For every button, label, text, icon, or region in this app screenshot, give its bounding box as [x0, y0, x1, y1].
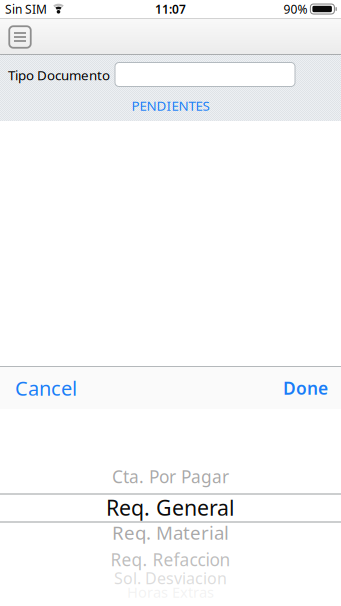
- staticText: Sin SIM: [5, 1, 47, 17]
- staticText: Done: [283, 376, 328, 399]
- staticText: Horas Extras: [127, 582, 214, 602]
- button[interactable]: Cta. Por Pagar: [112, 465, 229, 488]
- staticText: Sol. Desviacion: [114, 567, 227, 589]
- staticText: PENDIENTES: [131, 97, 209, 114]
- staticText: Req. General: [106, 493, 235, 522]
- button[interactable]: Cancel: [15, 367, 77, 408]
- staticText: Req. Material: [112, 520, 229, 545]
- staticText: Req. Refaccion: [110, 548, 230, 571]
- staticText: 11:07: [155, 1, 186, 17]
- button[interactable]: Tipo Documento: [115, 62, 295, 86]
- staticText: Cta. Por Pagar: [112, 465, 229, 488]
- button[interactable]: Menu: [7, 24, 32, 49]
- staticText: Cancel: [15, 375, 77, 401]
- button[interactable]: Done: [283, 367, 328, 408]
- staticText: Tipo Documento: [8, 66, 110, 84]
- button[interactable]: Req. General: [106, 493, 235, 522]
- button[interactable]: Horas Extras: [127, 582, 214, 602]
- button[interactable]: Req. Material: [112, 520, 229, 545]
- button[interactable]: Sol. Desviacion: [114, 567, 227, 589]
- button[interactable]: PENDIENTES: [127, 93, 213, 118]
- button[interactable]: Req. Refaccion: [110, 548, 230, 571]
- staticText: 90%: [283, 1, 307, 17]
